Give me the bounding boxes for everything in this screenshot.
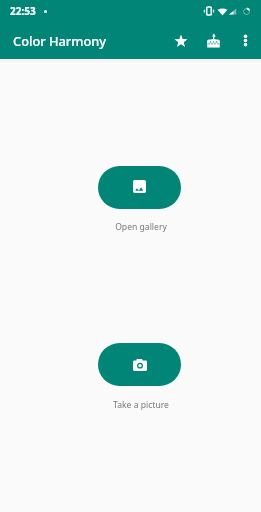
- button[interactable]: More options: [229, 22, 261, 59]
- staticText: 22:53: [10, 4, 36, 18]
- button[interactable]: Open gallery: [98, 166, 181, 209]
- staticText: Color Harmony: [13, 32, 106, 49]
- staticText: Take a picture: [113, 399, 169, 411]
- staticText: Open gallery: [115, 221, 167, 233]
- button[interactable]: Favorites: [165, 22, 197, 59]
- button[interactable]: Take a picture: [98, 343, 181, 386]
- button[interactable]: Birthday: [197, 22, 229, 59]
